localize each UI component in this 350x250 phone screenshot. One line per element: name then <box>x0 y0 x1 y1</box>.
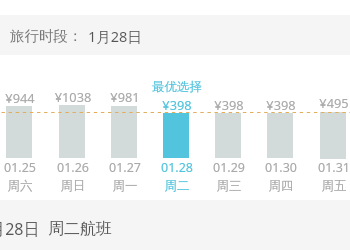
staticText: 01.31 <box>308 159 350 176</box>
staticText: 周五 <box>308 178 350 194</box>
button[interactable] <box>6 106 32 158</box>
staticText: ¥398 <box>151 96 203 113</box>
button[interactable] <box>111 106 137 158</box>
staticText: ¥495 <box>308 94 350 111</box>
staticText: 01.28 <box>151 159 203 176</box>
staticText: 周日 <box>47 178 99 194</box>
staticText: 周四 <box>255 178 307 194</box>
staticText: 01.26 <box>47 159 99 176</box>
staticText: 周六 <box>0 178 46 194</box>
button[interactable]: 1月28日 <box>0 218 112 240</box>
staticText: ¥981 <box>99 88 151 105</box>
button[interactable]: 旅行时段： <box>10 26 142 46</box>
staticText: 周一 <box>99 178 151 194</box>
staticText: 1月28日 <box>88 26 142 46</box>
staticText: ¥944 <box>0 89 46 106</box>
staticText: 最优选择 <box>151 79 203 95</box>
staticText: 1月28日 <box>0 218 40 240</box>
staticText: ¥398 <box>255 96 307 113</box>
staticText: ¥1038 <box>47 88 99 105</box>
staticText: 01.29 <box>203 159 255 176</box>
staticText: 周三 <box>203 178 255 194</box>
staticText: 旅行时段： <box>10 27 83 45</box>
staticText: 周二 <box>151 178 203 194</box>
button[interactable] <box>320 112 346 159</box>
staticText: 01.25 <box>0 159 46 176</box>
staticText: ¥398 <box>203 96 255 113</box>
staticText: 01.27 <box>99 159 151 176</box>
staticText: 周二航班 <box>48 219 112 239</box>
button[interactable] <box>59 105 85 158</box>
staticText: 01.30 <box>255 159 307 176</box>
